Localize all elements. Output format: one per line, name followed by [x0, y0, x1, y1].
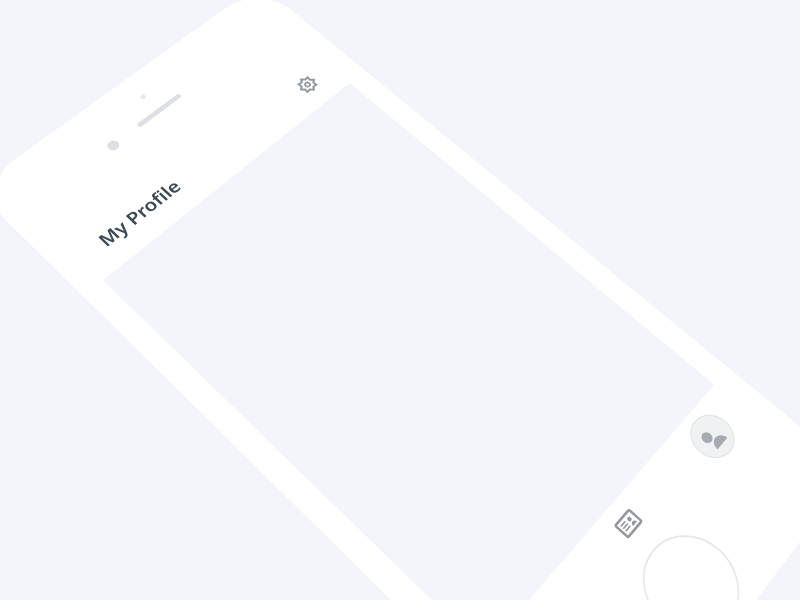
button[interactable]: Notifications	[637, 435, 709, 508]
button[interactable]: Search	[542, 540, 619, 600]
button[interactable]: Settings	[287, 68, 328, 101]
button[interactable]: Profile	[675, 400, 738, 463]
button[interactable]: Cards	[591, 486, 665, 563]
staticText: My Profile	[92, 175, 186, 251]
button[interactable]: Home	[496, 592, 575, 600]
